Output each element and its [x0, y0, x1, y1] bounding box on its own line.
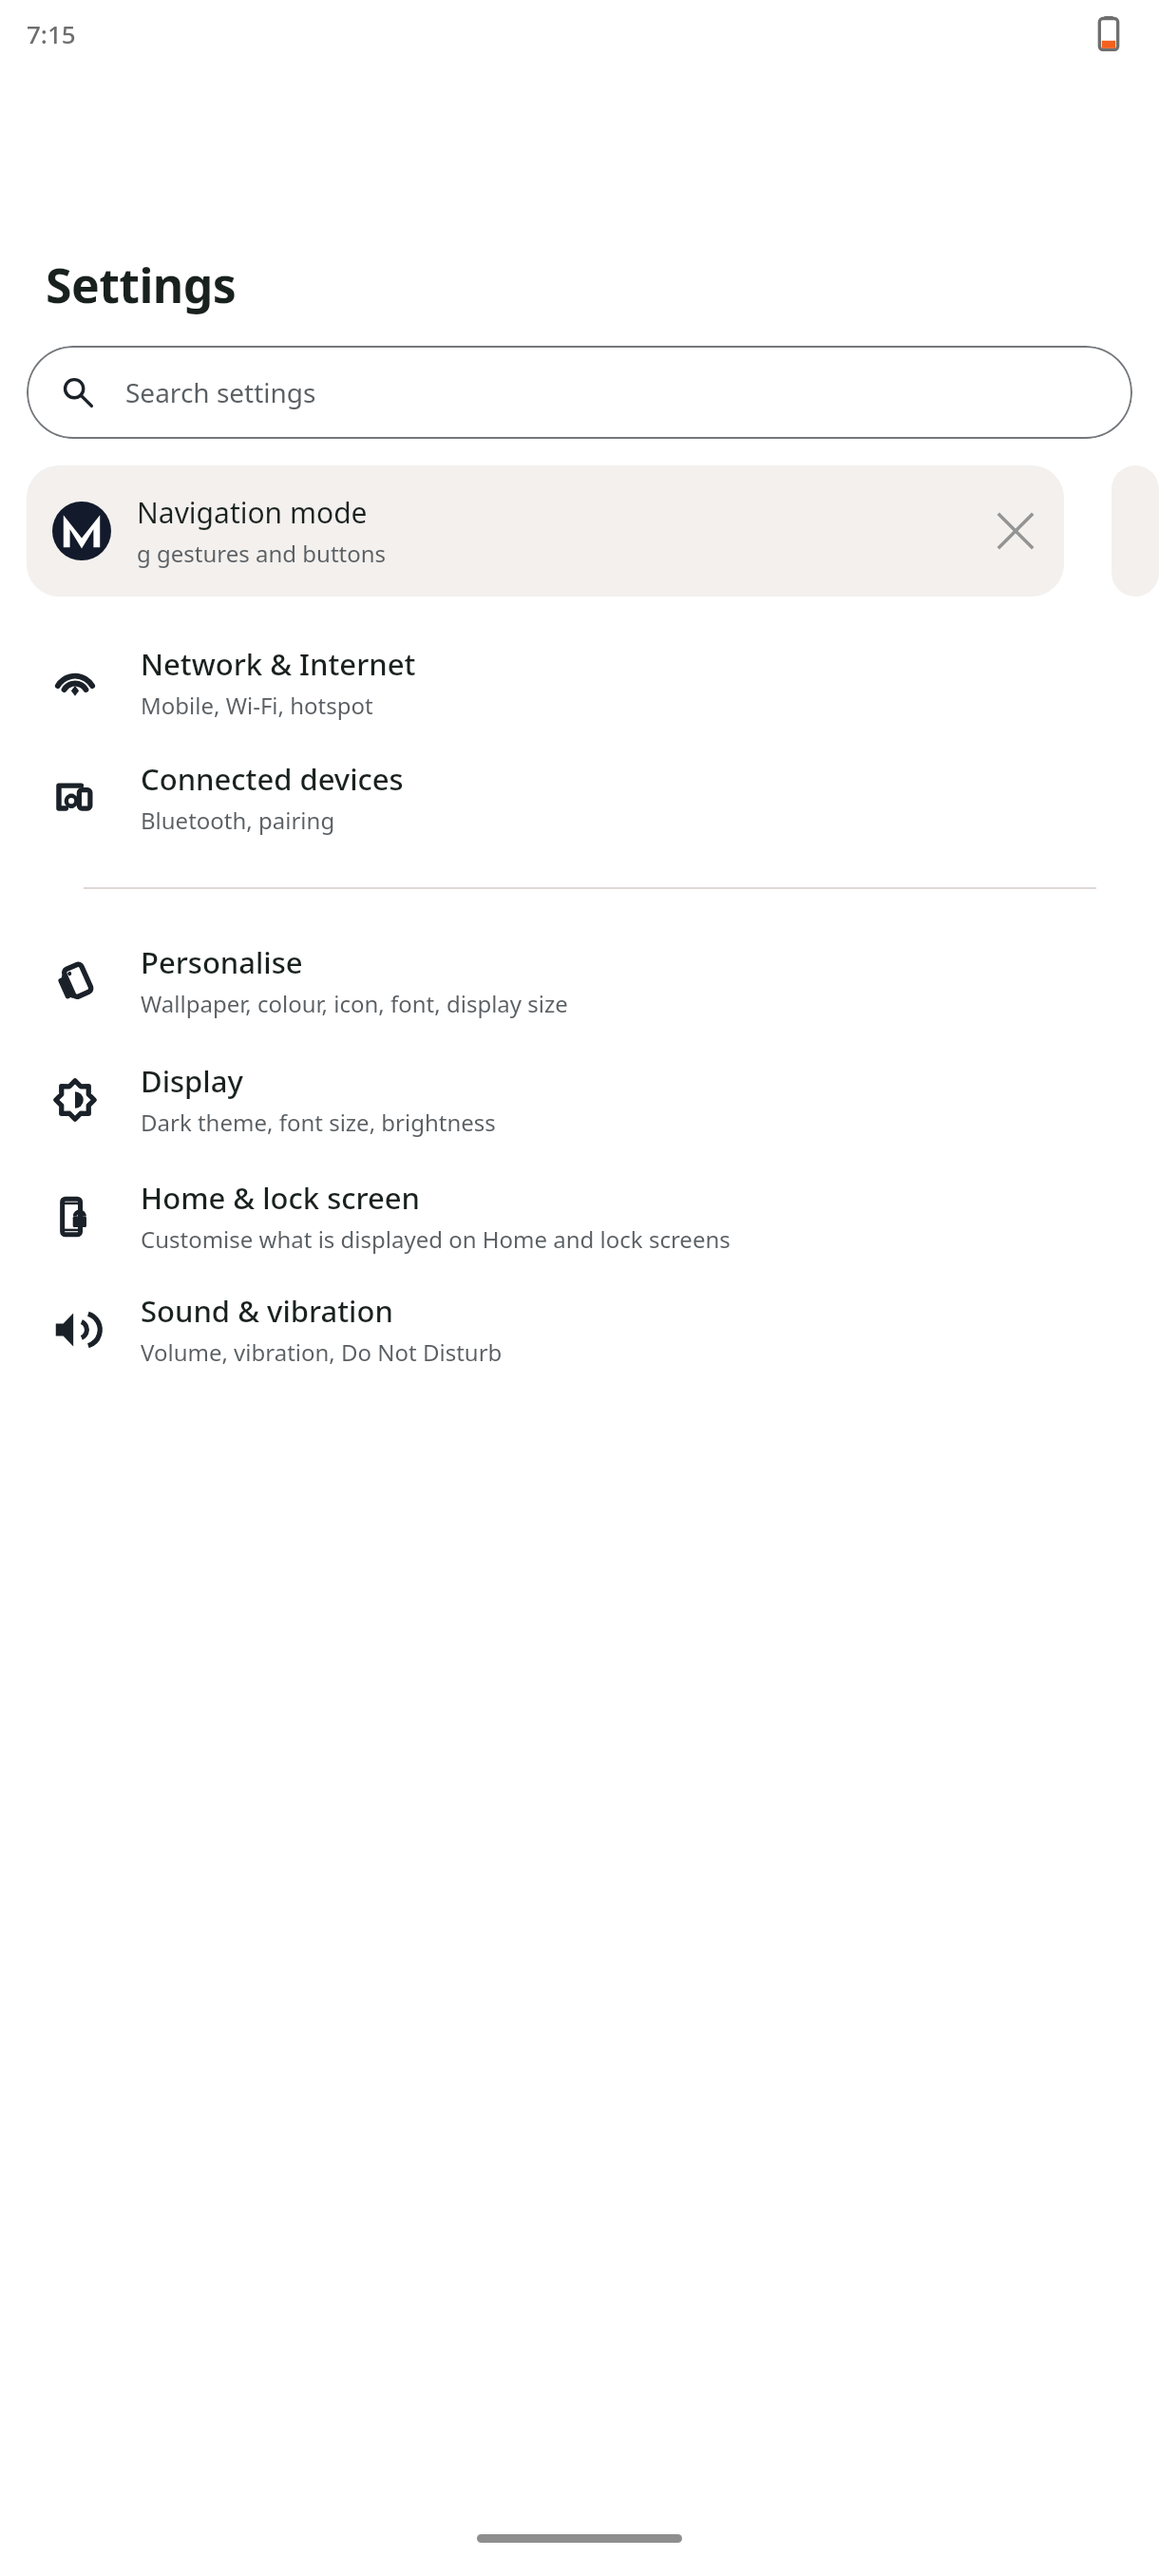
- staticText: g gestures and buttons: [137, 538, 387, 569]
- staticText: Mobile, Wi-Fi, hotspot: [141, 690, 373, 721]
- button[interactable]: Display: [0, 1061, 1159, 1138]
- staticText: Search settings: [125, 374, 316, 410]
- button[interactable]: Dismiss navigation mode tip: [978, 494, 1053, 568]
- staticText: Settings: [46, 253, 237, 317]
- button[interactable]: Network & Internet: [0, 644, 1159, 721]
- staticText: Network & Internet: [141, 644, 416, 684]
- staticText: Dark theme, font size, brightness: [141, 1107, 496, 1138]
- staticText: Display: [141, 1061, 243, 1101]
- button[interactable]: Personalise: [0, 942, 1159, 1019]
- staticText: Personalise: [141, 942, 303, 982]
- staticText: Home & lock screen: [141, 1178, 420, 1218]
- button[interactable]: Home & lock screen: [0, 1178, 1159, 1255]
- staticText: Customise what is displayed on Home and …: [141, 1223, 731, 1255]
- staticText: Sound & vibration: [141, 1291, 393, 1331]
- staticText: Bluetooth, pairing: [141, 805, 335, 836]
- staticText: Volume, vibration, Do Not Disturb: [141, 1336, 503, 1368]
- button[interactable]: [1111, 465, 1159, 597]
- staticText: Wallpaper, colour, icon, font, display s…: [141, 988, 568, 1019]
- button[interactable]: Sound & vibration: [0, 1291, 1159, 1368]
- staticText: 7:15: [27, 17, 76, 50]
- button[interactable]: Navigation mode: [27, 465, 1064, 597]
- staticText: Navigation mode: [137, 493, 368, 532]
- button[interactable]: Connected devices: [0, 759, 1159, 836]
- staticText: Connected devices: [141, 759, 404, 799]
- button[interactable]: Search settings: [27, 346, 1132, 439]
